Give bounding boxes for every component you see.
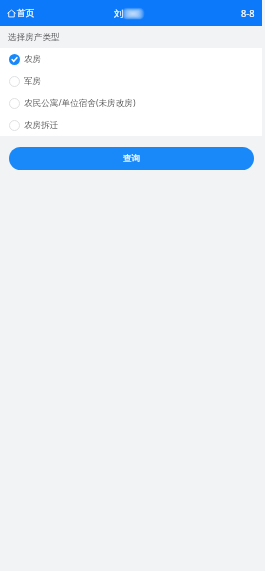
button[interactable]: 农房拆迁 <box>0 114 262 136</box>
staticText: 农房拆迁 <box>24 120 59 131</box>
button[interactable]: Home <box>0 0 39 26</box>
staticText: 查询 <box>123 153 141 164</box>
staticText: 农民公寓/单位宿舍(未房改房) <box>24 97 136 109</box>
staticText: 刘 <box>114 8 123 19</box>
staticText: 首页 <box>17 8 35 19</box>
button[interactable]: 农房 <box>0 48 262 70</box>
other: 刘 (用户姓名) <box>114 6 148 20</box>
button[interactable]: 军房 <box>0 70 262 92</box>
other: Home <box>7 9 16 18</box>
staticText: 农房 <box>24 54 42 65</box>
staticText: 军房 <box>24 76 42 87</box>
button[interactable]: 8-8 <box>241 0 262 26</box>
staticText: 8-8 <box>241 7 255 20</box>
button[interactable]: 查询 <box>9 147 254 170</box>
button[interactable]: 农民公寓/单位宿舍(未房改房) <box>0 92 262 114</box>
staticText: 选择房产类型 <box>8 32 60 43</box>
